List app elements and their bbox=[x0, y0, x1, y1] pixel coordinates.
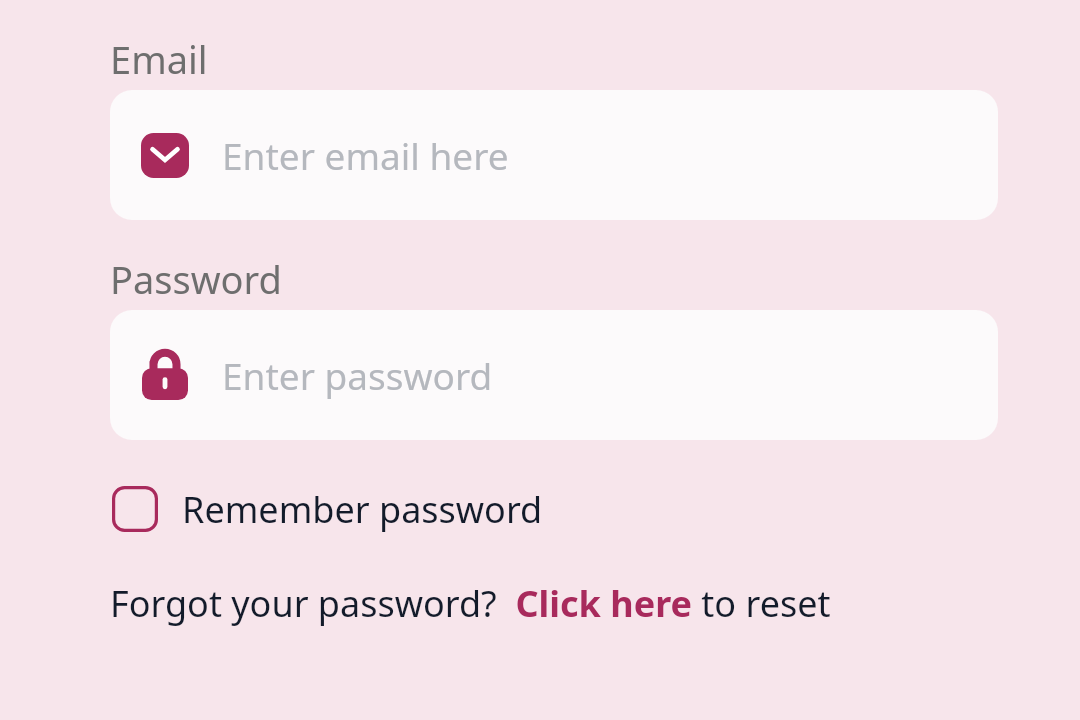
button[interactable]: Remember password bbox=[110, 472, 543, 546]
other: Email bbox=[140, 130, 190, 180]
staticText: Email bbox=[110, 33, 208, 85]
button[interactable]: Email bbox=[110, 90, 998, 220]
staticText: Password bbox=[110, 253, 282, 305]
button[interactable]: Forgot your password? Click here to rese… bbox=[110, 572, 998, 634]
staticText: Enter email here bbox=[222, 130, 509, 180]
button[interactable]: Password bbox=[110, 310, 998, 440]
staticText: Forgot your password? Click here to rese… bbox=[110, 579, 831, 628]
other: Password bbox=[140, 350, 190, 400]
staticText: Remember password bbox=[182, 485, 543, 534]
staticText: Enter password bbox=[222, 350, 493, 400]
